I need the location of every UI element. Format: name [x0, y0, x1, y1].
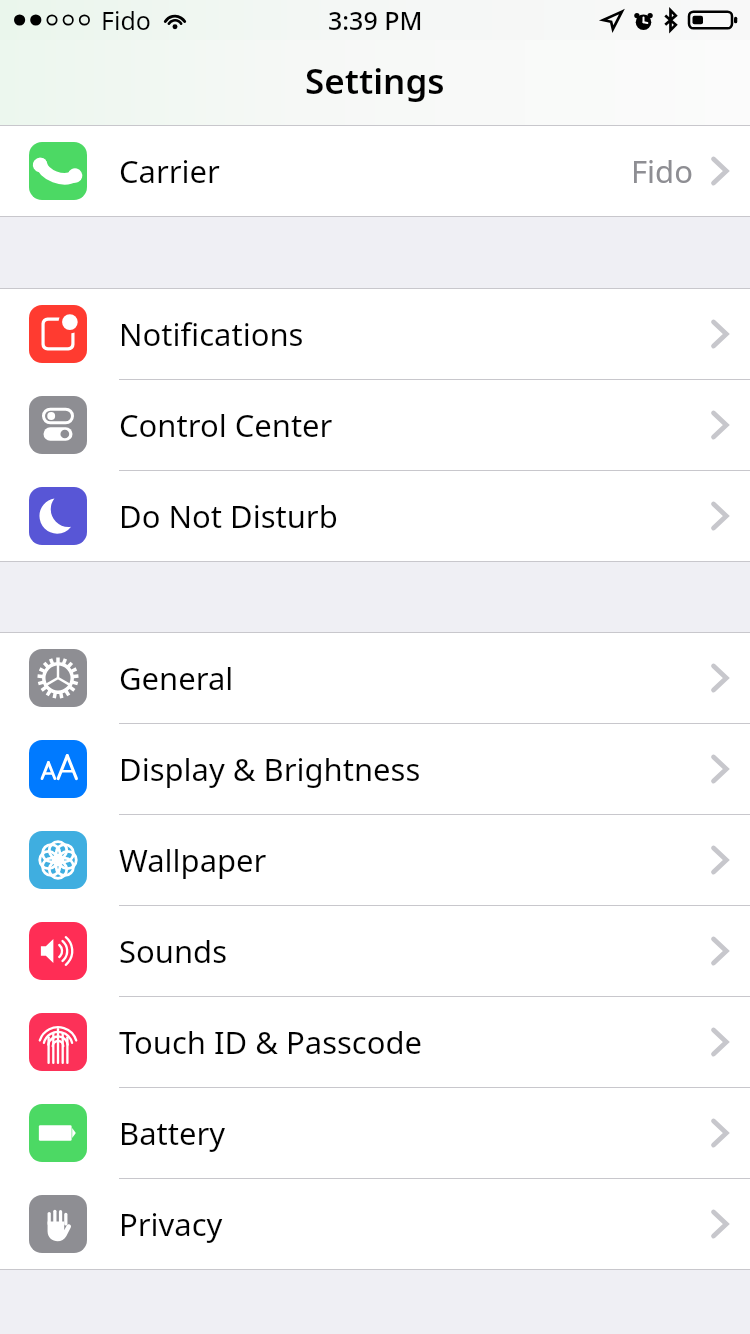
other: General [29, 649, 87, 707]
button[interactable]: Wallpaper [0, 815, 750, 905]
staticText: Fido [101, 3, 151, 37]
button[interactable]: Battery [0, 1088, 750, 1178]
button[interactable]: Carrier [0, 126, 750, 216]
staticText: Control Center [119, 404, 333, 446]
staticText: Wallpaper [119, 839, 267, 881]
staticText: General [119, 657, 234, 699]
other: Display & Brightness [29, 740, 87, 798]
other: Touch ID & Passcode [29, 1013, 87, 1071]
staticText: Display & Brightness [119, 748, 421, 790]
other: Wallpaper [29, 831, 87, 889]
staticText: Settings [305, 57, 445, 105]
staticText: Sounds [119, 930, 228, 972]
button[interactable]: General [0, 633, 750, 723]
button[interactable]: Control Center [0, 380, 750, 470]
staticText: 3:39 PM [328, 3, 423, 37]
button[interactable]: Sounds [0, 906, 750, 996]
button[interactable]: Display & Brightness [0, 724, 750, 814]
other: Do Not Disturb [29, 487, 87, 545]
other: Carrier [29, 142, 87, 200]
button[interactable]: Privacy [0, 1179, 750, 1269]
other: Control Center [29, 396, 87, 454]
staticText: Fido [631, 150, 693, 192]
staticText: Carrier [119, 150, 220, 192]
staticText: Privacy [119, 1203, 223, 1245]
staticText: Notifications [119, 313, 304, 355]
staticText: Do Not Disturb [119, 495, 338, 537]
staticText: Touch ID & Passcode [119, 1021, 423, 1063]
button[interactable]: Touch ID & Passcode [0, 997, 750, 1087]
button[interactable]: Do Not Disturb [0, 471, 750, 561]
other: Privacy [29, 1195, 87, 1253]
other: Sounds [29, 922, 87, 980]
other: Battery [29, 1104, 87, 1162]
staticText: Battery [119, 1112, 226, 1154]
button[interactable]: Notifications [0, 289, 750, 379]
other: Notifications [29, 305, 87, 363]
